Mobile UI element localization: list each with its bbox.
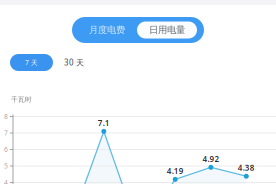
staticText: 6 bbox=[4, 145, 8, 154]
button[interactable]: 日用电量 bbox=[137, 17, 204, 43]
button[interactable]: 7 天 bbox=[10, 54, 53, 71]
staticText: 4.19 bbox=[167, 166, 184, 176]
button[interactable]: 月度电费 bbox=[72, 17, 137, 43]
staticText: 8 bbox=[4, 112, 8, 121]
staticText: 4 bbox=[4, 178, 8, 184]
staticText: 7 天 bbox=[25, 58, 38, 67]
staticText: 30 天 bbox=[64, 57, 84, 68]
staticText: 日用电量 bbox=[149, 24, 185, 36]
staticText: 4.92 bbox=[202, 153, 219, 164]
staticText: 5 bbox=[4, 162, 8, 170]
staticText: 4.38 bbox=[238, 162, 255, 173]
staticText: 千瓦时 bbox=[11, 95, 32, 104]
button[interactable]: 30 天 bbox=[53, 54, 95, 71]
staticText: 7 bbox=[4, 129, 8, 137]
staticText: 月度电费 bbox=[89, 24, 125, 36]
staticText: 7.1 bbox=[98, 117, 110, 128]
